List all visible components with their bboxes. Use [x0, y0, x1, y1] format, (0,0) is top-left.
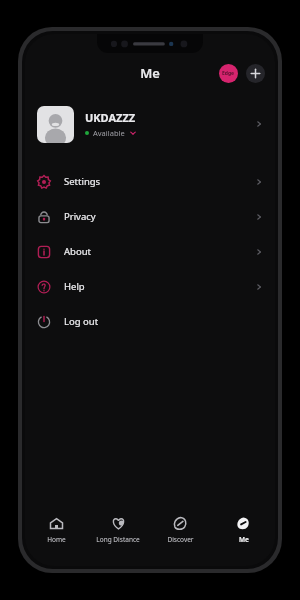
button[interactable]: Log out [25, 304, 275, 339]
staticText: UKDAZZZ [85, 110, 136, 125]
button[interactable]: Long Distance [87, 508, 149, 552]
button[interactable]: UKDAZZZ [25, 100, 275, 148]
staticText: Available [93, 128, 125, 138]
staticText: Log out [64, 315, 99, 328]
button[interactable]: Edge [219, 64, 238, 83]
staticText: Edge [222, 70, 235, 77]
button[interactable]: Discover [149, 508, 212, 552]
button[interactable]: Add [246, 64, 265, 83]
button[interactable]: Me [212, 508, 275, 552]
staticText: Me [140, 64, 160, 82]
staticText: Settings [64, 175, 255, 188]
staticText: Privacy [64, 210, 255, 223]
button[interactable]: Settings [25, 164, 275, 199]
button[interactable]: Home [25, 508, 87, 552]
button[interactable]: Privacy [25, 199, 275, 234]
staticText: Discover [167, 535, 194, 544]
button[interactable]: About [25, 234, 275, 269]
staticText: Me [239, 535, 249, 544]
staticText: About [64, 245, 255, 258]
staticText: Home [47, 535, 66, 544]
staticText: Long Distance [96, 535, 140, 544]
button[interactable]: Help [25, 269, 275, 304]
staticText: Help [64, 280, 255, 293]
